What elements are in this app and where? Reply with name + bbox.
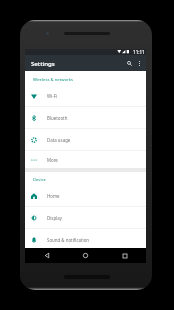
staticText: Data usage — [47, 137, 71, 143]
button[interactable]: Home — [25, 185, 146, 207]
button[interactable]: Home — [80, 250, 91, 261]
staticText: Wi-Fi — [47, 93, 58, 99]
button[interactable]: More — [25, 151, 146, 168]
button[interactable]: Back — [41, 250, 52, 261]
button[interactable]: Sound & notification — [25, 229, 146, 251]
staticText: Wireless & networks — [33, 77, 73, 83]
staticText: Display — [47, 215, 62, 221]
staticText: 11:11 — [133, 49, 145, 55]
staticText: Device — [33, 177, 46, 183]
staticText: More — [47, 157, 58, 163]
button[interactable]: Bluetooth — [25, 107, 146, 129]
button[interactable]: Search — [124, 58, 134, 68]
button[interactable]: Display — [25, 207, 146, 229]
staticText: Home — [47, 193, 60, 199]
button[interactable]: Recent apps — [119, 250, 130, 261]
button[interactable]: Data usage — [25, 129, 146, 151]
button[interactable]: More options — [134, 58, 144, 68]
staticText: Sound & notification — [47, 237, 90, 243]
staticText: Bluetooth — [47, 115, 68, 121]
staticText: Settings — [31, 59, 55, 67]
button[interactable]: Wi-Fi — [25, 85, 146, 107]
